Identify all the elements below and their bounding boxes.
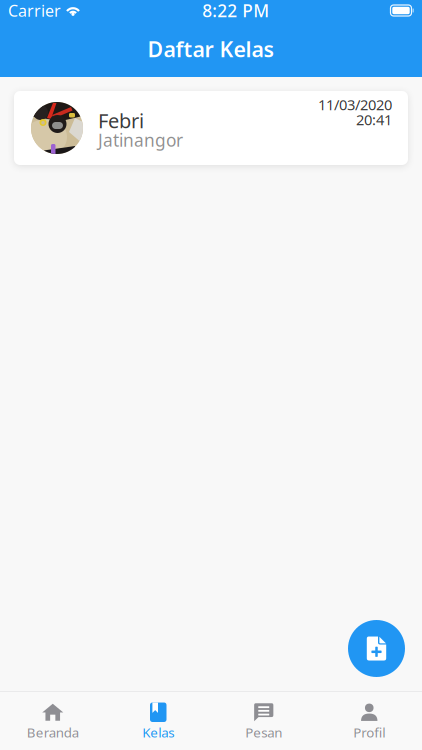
button[interactable]: Pesan [211, 691, 316, 750]
button[interactable]: New class [348, 620, 405, 677]
staticText: Febri [98, 107, 144, 134]
staticText: Pesan [245, 723, 282, 741]
button[interactable]: Kelas [105, 691, 211, 750]
button[interactable]: Beranda [0, 691, 105, 750]
staticText: Profil [353, 723, 385, 741]
staticText: 11/03/2020 [318, 95, 392, 114]
staticText: Carrier [8, 0, 61, 21]
staticText: 20:41 [356, 110, 392, 129]
staticText: Daftar Kelas [147, 35, 274, 63]
staticText: Kelas [142, 723, 174, 741]
staticText: 8:22 PM [202, 0, 269, 22]
button[interactable]: Profil [316, 691, 422, 750]
staticText: Beranda [27, 723, 79, 741]
staticText: Jatinangor [98, 128, 183, 151]
button[interactable]: Febri [14, 91, 408, 165]
